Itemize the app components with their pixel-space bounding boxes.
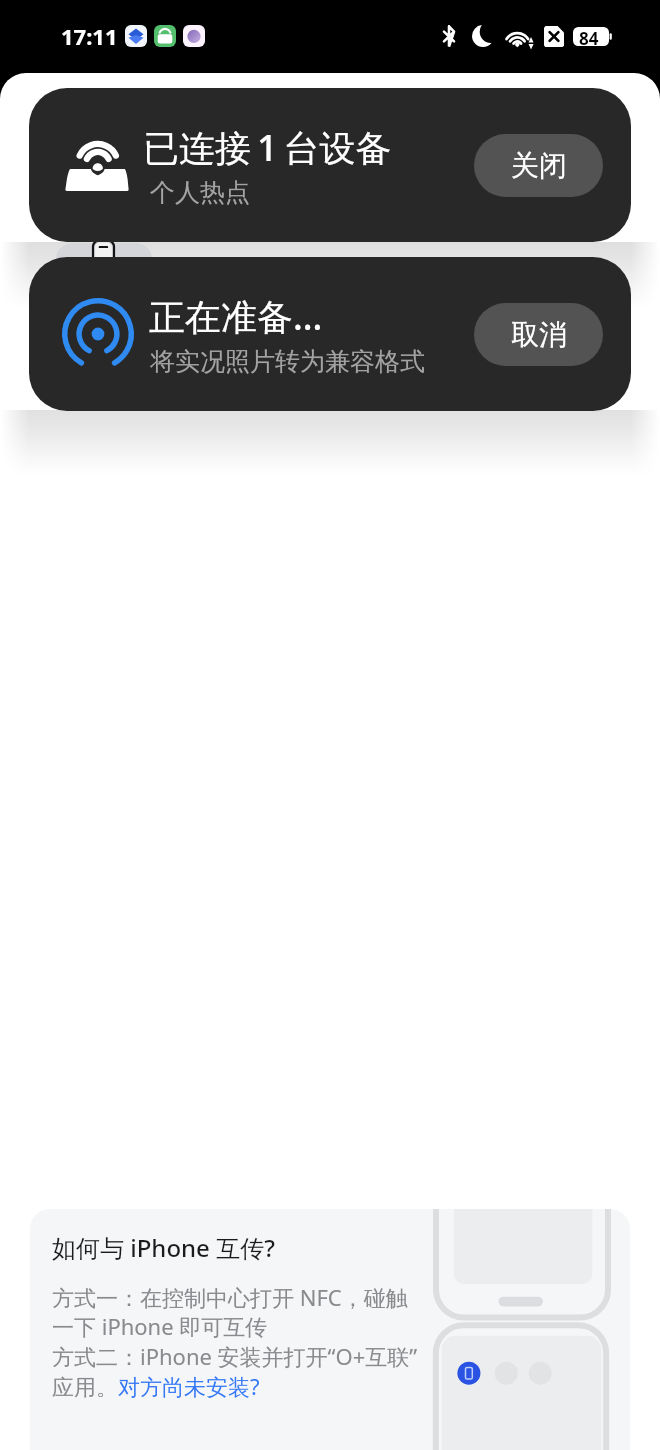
staticText: 关闭: [511, 148, 567, 183]
button[interactable]: 取消: [474, 303, 603, 366]
staticText: 已连接 1 台设备: [143, 123, 392, 172]
staticText: 17:11: [61, 21, 118, 51]
button[interactable]: 已连接 1 台设备: [29, 88, 631, 242]
button[interactable]: 如何与 iPhone 互传?: [30, 1209, 630, 1450]
staticText: 将实况照片转为兼容格式: [150, 346, 425, 377]
staticText: 方式一：在控制中心打开 NFC，碰触 一下 iPhone 即可互传 方式二：iP…: [52, 1282, 418, 1402]
staticText: 正在准备...: [149, 292, 323, 341]
staticText: 84: [579, 27, 599, 46]
staticText: 如何与 iPhone 互传?: [52, 1231, 275, 1264]
button[interactable]: 关闭: [474, 134, 603, 197]
button[interactable]: 正在准备...: [29, 257, 631, 411]
staticText: 个人热点: [150, 177, 250, 208]
staticText: 取消: [511, 317, 567, 352]
